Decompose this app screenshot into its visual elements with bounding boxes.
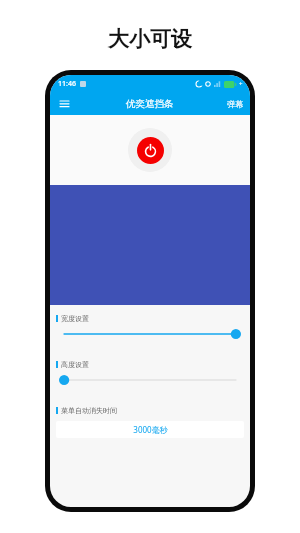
button[interactable] (50, 325, 250, 343)
staticText: 3000毫秒 (133, 424, 168, 435)
staticText: + (239, 80, 243, 88)
staticText: 高度设置 (61, 360, 89, 369)
staticText: 弹幕 (227, 99, 243, 109)
staticText: 大小可设 (108, 26, 192, 52)
staticText: 菜单自动消失时间 (61, 406, 117, 415)
button[interactable]: 3000毫秒 (56, 421, 244, 438)
button[interactable] (50, 371, 250, 389)
staticText: 11:46 (58, 79, 76, 89)
button[interactable]: Power toggle (128, 128, 172, 172)
staticText: 宽度设置 (61, 314, 89, 323)
button[interactable]: Menu (56, 96, 72, 112)
button[interactable]: 弹幕 (220, 95, 250, 113)
staticText: 优奕遮挡条 (126, 98, 174, 110)
